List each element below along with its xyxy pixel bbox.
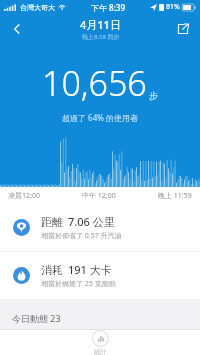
staticText: 今日動態 23 bbox=[12, 312, 61, 324]
staticText: 晚上 11:59 bbox=[158, 191, 192, 201]
staticText: 中午 12:00 bbox=[82, 191, 116, 201]
button[interactable]: 返回 bbox=[0, 14, 34, 44]
staticText: 81% bbox=[166, 2, 180, 12]
staticText: 下午 8:39 bbox=[91, 2, 125, 13]
button[interactable]: 統計 bbox=[70, 330, 130, 355]
staticText: 晚上8:38 同步 bbox=[82, 33, 120, 41]
staticText: 相當於節省了 0.57 升汽油 bbox=[41, 231, 122, 241]
staticText: 191 大卡 bbox=[68, 262, 112, 277]
staticText: 統計 bbox=[94, 348, 106, 355]
staticText: 7.06 公里 bbox=[68, 214, 115, 229]
staticText: 消耗 bbox=[41, 263, 63, 277]
staticText: 距離 bbox=[41, 215, 63, 229]
staticText: 凌晨12:00 bbox=[8, 191, 40, 201]
staticText: 步 bbox=[149, 90, 158, 101]
staticText: 4月11日 bbox=[80, 17, 121, 32]
staticText: 相當於燃燒了 25 克脂肪 bbox=[41, 279, 116, 289]
button[interactable]: 分享 bbox=[166, 14, 200, 44]
button[interactable]: 距離 bbox=[0, 204, 200, 251]
staticText: 台灣大哥大 bbox=[20, 3, 55, 12]
staticText: 10,656 bbox=[42, 60, 147, 106]
staticText: 超過了 64% 的使用者 bbox=[62, 112, 138, 123]
button[interactable]: 消耗 bbox=[0, 252, 200, 299]
